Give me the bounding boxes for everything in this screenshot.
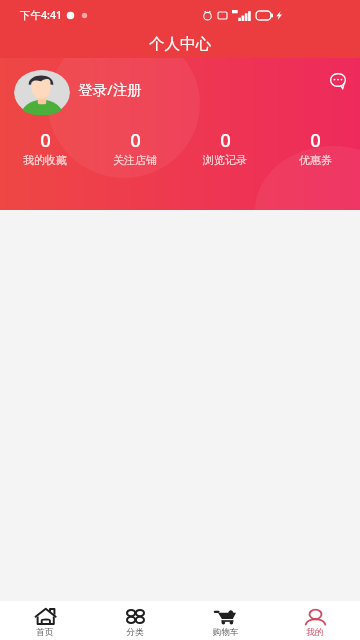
button[interactable]: 购物车 — [180, 601, 270, 638]
button[interactable]: 0 — [270, 127, 360, 167]
button[interactable]: 我的 — [270, 601, 360, 638]
button[interactable]: 0 — [180, 127, 270, 167]
staticText: 0 — [310, 127, 321, 152]
button[interactable]: 分类 — [90, 601, 180, 638]
staticText: 0 — [40, 127, 51, 152]
staticText: 浏览记录 — [203, 153, 247, 167]
staticText: 购物车 — [212, 627, 239, 638]
staticText: 优惠券 — [299, 153, 332, 167]
staticText: 我的收藏 — [23, 153, 67, 167]
button[interactable] — [14, 70, 70, 115]
staticText: 关注店铺 — [113, 153, 157, 167]
button[interactable]: 0 — [0, 127, 90, 167]
staticText: 下午4:41 — [20, 8, 62, 22]
button[interactable]: 0 — [90, 127, 180, 167]
staticText: 0 — [220, 127, 231, 152]
staticText: 0 — [130, 127, 141, 152]
staticText: 首页 — [36, 627, 54, 638]
button[interactable]: 消息 — [323, 65, 353, 95]
staticText: 分类 — [126, 627, 144, 638]
staticText: 登录/注册 — [78, 79, 142, 99]
button[interactable]: 首页 — [0, 601, 90, 638]
staticText: 个人中心 — [149, 34, 211, 54]
staticText: 我的 — [306, 627, 324, 638]
